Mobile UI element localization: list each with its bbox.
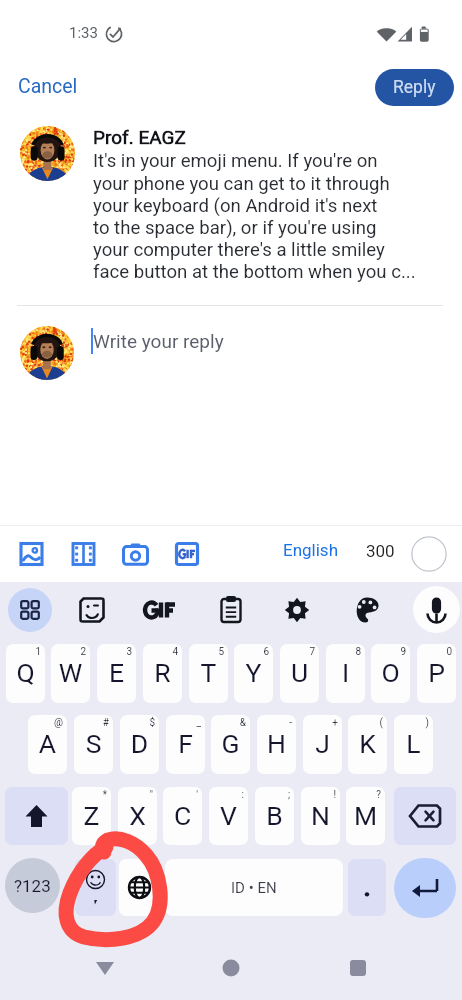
staticText: 1 — [6, 646, 41, 658]
staticText: B — [255, 800, 294, 845]
button[interactable]: Cancel — [10, 69, 86, 104]
staticText: ! — [301, 789, 336, 801]
staticText: W — [51, 657, 90, 703]
staticText: ID • EN — [231, 879, 277, 897]
button[interactable]: Y — [234, 644, 273, 703]
button[interactable]: B — [255, 787, 294, 845]
button[interactable]: K — [348, 715, 387, 774]
button[interactable]: Backspace — [394, 787, 456, 845]
staticText: 6 — [234, 646, 269, 658]
staticText: : — [209, 789, 244, 801]
button[interactable]: I — [326, 644, 365, 703]
button[interactable]: A — [28, 715, 67, 774]
button[interactable]: R — [143, 644, 182, 703]
button[interactable]: Voice input — [413, 586, 460, 633]
staticText: English — [283, 540, 339, 560]
staticText: Prof. EAGZ — [93, 126, 186, 148]
button[interactable]: J — [303, 715, 342, 774]
button[interactable]: Period — [348, 859, 386, 916]
button[interactable]: L — [394, 715, 433, 774]
staticText: D — [120, 728, 159, 774]
staticText: ; — [255, 789, 290, 801]
staticText: N — [301, 800, 340, 845]
button[interactable]: S — [74, 715, 113, 774]
button[interactable]: P — [417, 644, 456, 703]
button[interactable]: ?123 — [5, 858, 60, 913]
button[interactable]: E — [97, 644, 136, 703]
staticText: Cancel — [18, 75, 78, 98]
staticText: F — [166, 728, 205, 774]
button[interactable]: U — [280, 644, 319, 703]
staticText: It's in your emoji menu. If you're on yo… — [93, 150, 416, 282]
button[interactable]: C — [163, 787, 202, 845]
button[interactable]: Apps — [8, 588, 52, 632]
staticText: Y — [234, 657, 273, 703]
staticText: I — [326, 657, 365, 703]
staticText: + — [303, 717, 338, 729]
staticText: S — [74, 728, 113, 774]
staticText: 1:33 — [69, 24, 98, 42]
staticText: C — [163, 800, 202, 845]
staticText: ?123 — [14, 876, 51, 896]
button[interactable]: M — [346, 787, 385, 845]
button[interactable]: X — [118, 787, 157, 845]
button[interactable]: Z — [72, 787, 111, 845]
staticText: H — [257, 728, 296, 774]
button[interactable]: G — [211, 715, 250, 774]
staticText: ) — [394, 717, 429, 729]
staticText: 300 — [366, 541, 395, 561]
button[interactable]: GIF — [138, 588, 182, 632]
button[interactable]: O — [371, 644, 410, 703]
button[interactable]: English — [281, 540, 341, 560]
button[interactable]: F — [166, 715, 205, 774]
staticText: V — [209, 800, 248, 845]
button[interactable]: Language — [119, 859, 160, 916]
button[interactable]: D — [120, 715, 159, 774]
staticText: * — [72, 789, 107, 801]
staticText: _ — [166, 717, 201, 729]
staticText: " — [118, 789, 153, 801]
staticText: X — [118, 800, 157, 845]
staticText: 3 — [97, 646, 132, 658]
staticText: 9 — [371, 646, 406, 658]
button[interactable]: Shift — [5, 787, 68, 845]
staticText: # — [74, 717, 109, 729]
button[interactable]: Themes — [345, 588, 389, 632]
button[interactable]: V — [209, 787, 248, 845]
button[interactable]: W — [51, 644, 90, 703]
button[interactable]: Profile — [411, 536, 447, 572]
staticText: ? — [346, 789, 381, 801]
button[interactable]: Stickers — [70, 588, 114, 632]
staticText: P — [417, 657, 456, 703]
staticText: @ — [28, 717, 63, 729]
staticText: Write your reply — [93, 330, 224, 352]
button[interactable]: Reply — [375, 69, 454, 106]
staticText: 7 — [280, 646, 315, 658]
staticText: Reply — [393, 77, 436, 98]
staticText: 2 — [51, 646, 86, 658]
button[interactable]: Emoji — [75, 859, 116, 916]
button[interactable]: T — [189, 644, 228, 703]
staticText: A — [28, 728, 67, 774]
button[interactable]: N — [301, 787, 340, 845]
staticText: 8 — [326, 646, 361, 658]
button[interactable]: Settings — [275, 588, 319, 632]
button[interactable]: ID • EN — [165, 859, 343, 916]
button[interactable]: Q — [6, 644, 45, 703]
staticText: - — [257, 717, 292, 729]
staticText: ' — [163, 789, 198, 801]
button[interactable]: H — [257, 715, 296, 774]
staticText: R — [143, 657, 182, 703]
button[interactable]: Clipboard — [209, 588, 253, 632]
staticText: E — [97, 657, 136, 703]
staticText: Q — [6, 657, 45, 703]
staticText: O — [371, 657, 410, 703]
staticText: 0 — [417, 646, 452, 658]
staticText: T — [189, 657, 228, 703]
staticText: L — [394, 728, 433, 774]
staticText: 5 — [189, 646, 224, 658]
staticText: G — [211, 728, 250, 774]
button[interactable]: Enter — [394, 858, 456, 918]
staticText: M — [346, 800, 385, 845]
staticText: J — [303, 728, 342, 774]
